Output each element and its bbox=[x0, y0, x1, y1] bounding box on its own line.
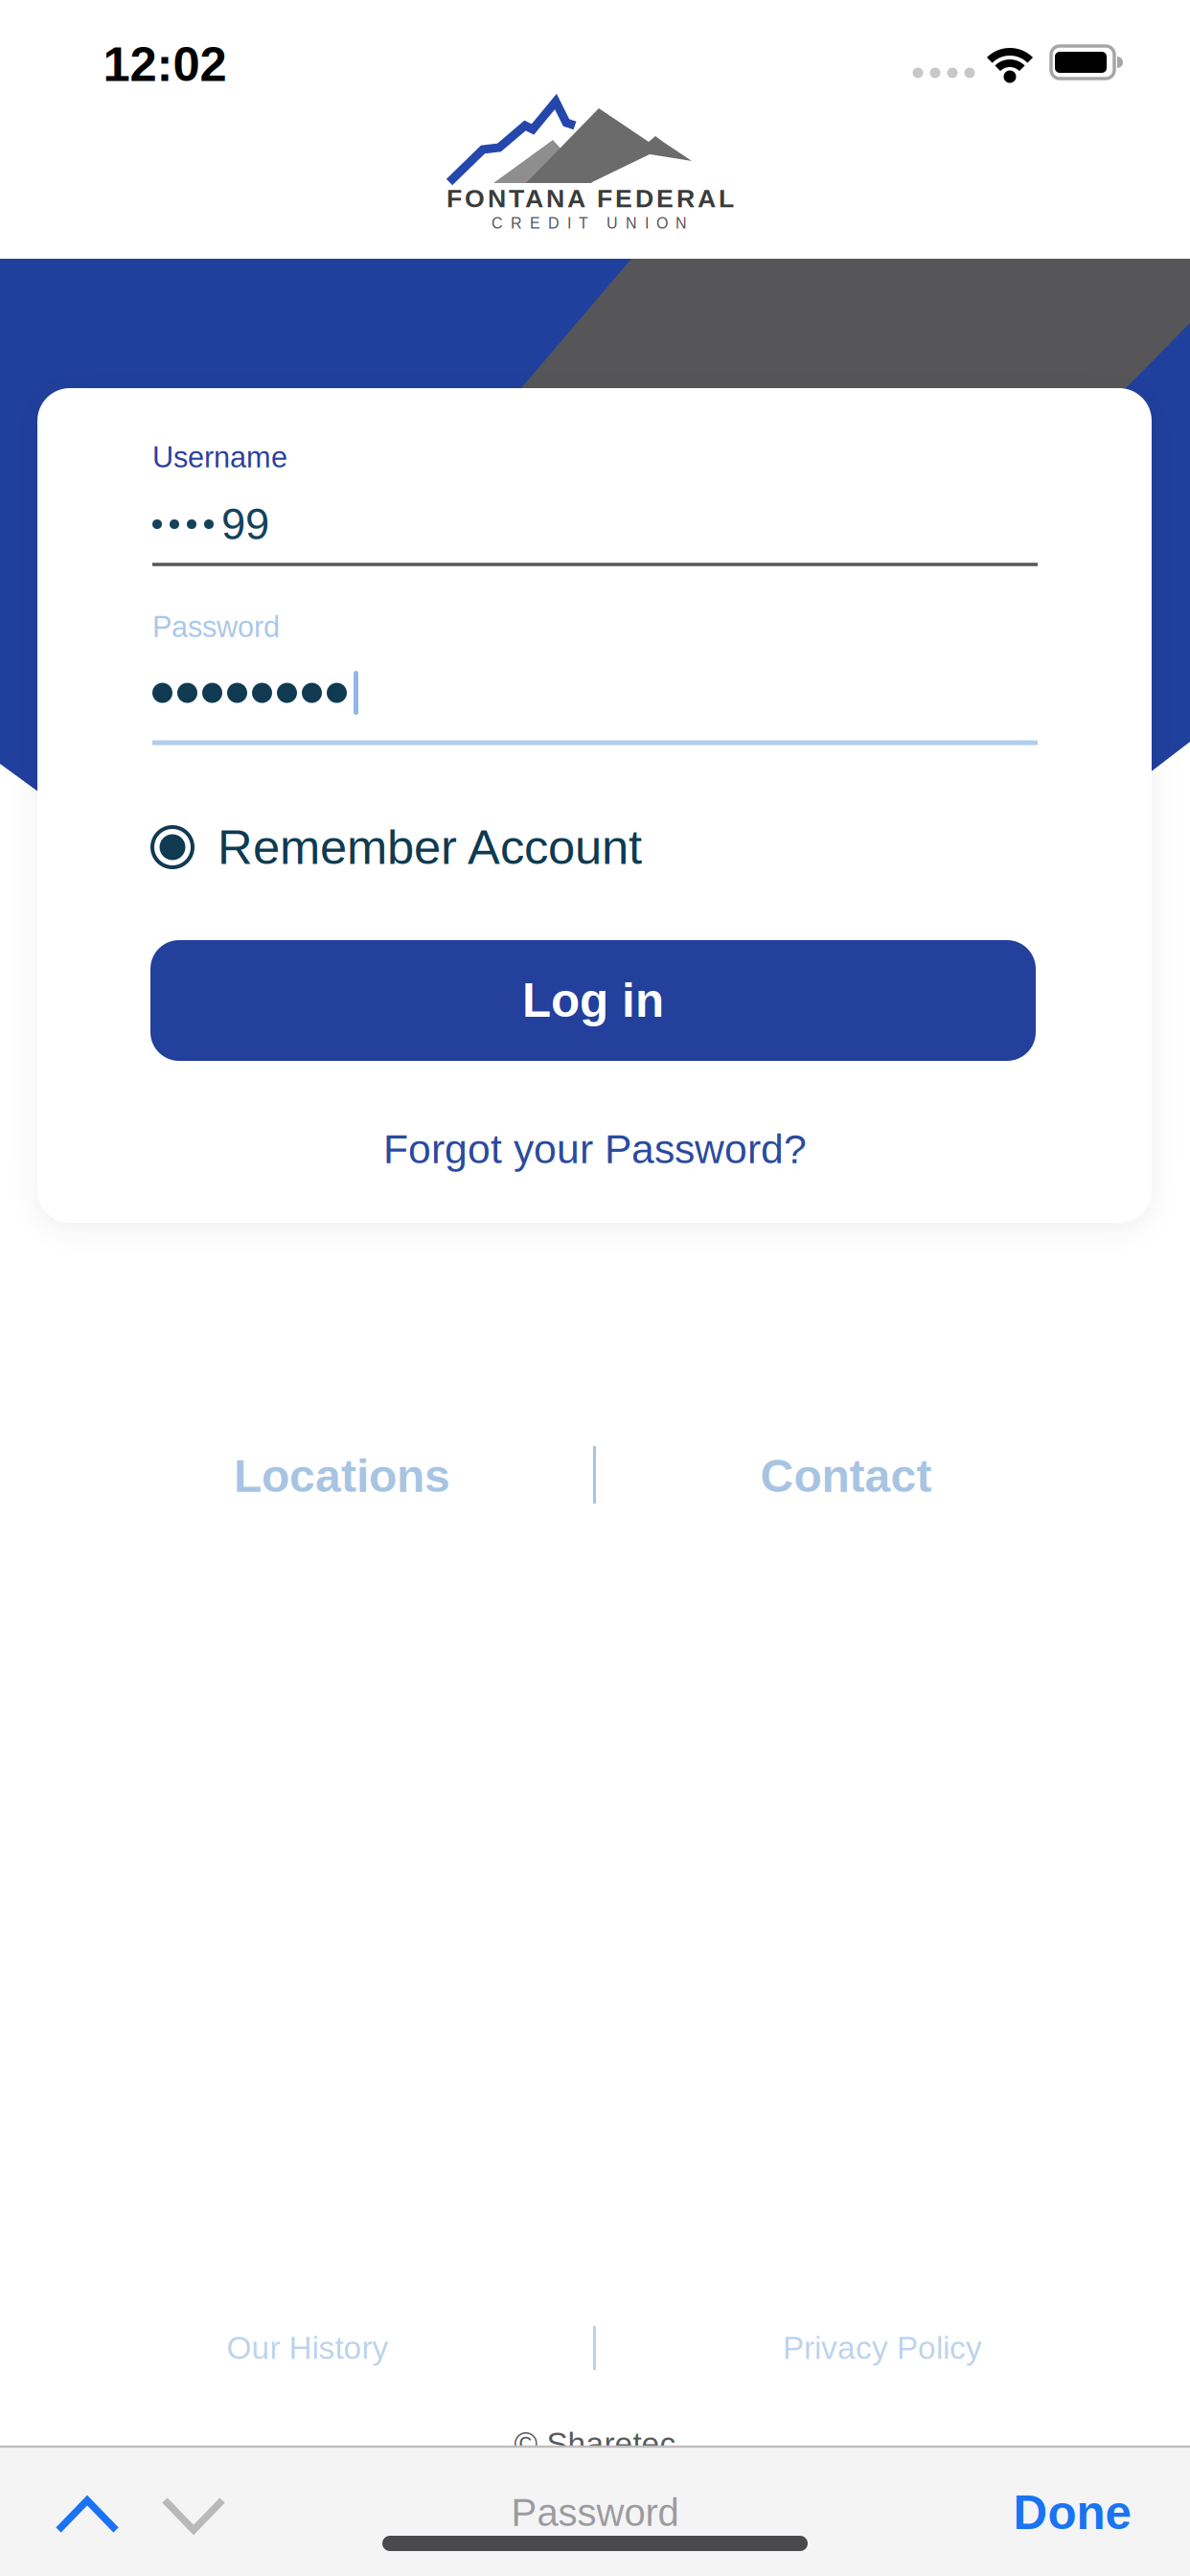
button[interactable]: Next field bbox=[161, 2495, 226, 2534]
staticText: Username bbox=[152, 441, 287, 473]
button[interactable]: Our History bbox=[227, 2330, 389, 2365]
staticText: Password bbox=[511, 2492, 679, 2534]
button[interactable]: Contact bbox=[760, 1451, 932, 1501]
staticText: 12:02 bbox=[103, 38, 227, 91]
staticText: Password bbox=[152, 611, 280, 643]
staticText: CREDIT UNION bbox=[492, 215, 687, 232]
staticText: Forgot your Password? bbox=[383, 1127, 807, 1171]
button[interactable]: Remember Account bbox=[152, 821, 1038, 874]
staticText: Locations bbox=[234, 1451, 450, 1501]
button[interactable]: Log in bbox=[150, 940, 1036, 1061]
staticText: 99 bbox=[221, 501, 269, 548]
staticText: Done bbox=[1013, 2487, 1131, 2538]
button[interactable]: Privacy Policy bbox=[783, 2330, 982, 2365]
staticText: Contact bbox=[760, 1451, 932, 1501]
staticText: Our History bbox=[227, 2330, 389, 2365]
staticText: FONTANA FEDERAL bbox=[446, 184, 734, 212]
button[interactable]: Done bbox=[1013, 2487, 1131, 2538]
button[interactable]: Locations bbox=[234, 1451, 450, 1501]
staticText: Log in bbox=[522, 975, 664, 1026]
staticText: Remember Account bbox=[217, 821, 642, 874]
staticText: Privacy Policy bbox=[783, 2330, 982, 2365]
button[interactable]: Forgot your Password? bbox=[383, 1127, 807, 1171]
staticText: © Sharetec bbox=[514, 2426, 676, 2461]
button[interactable]: Previous field bbox=[55, 2495, 120, 2534]
